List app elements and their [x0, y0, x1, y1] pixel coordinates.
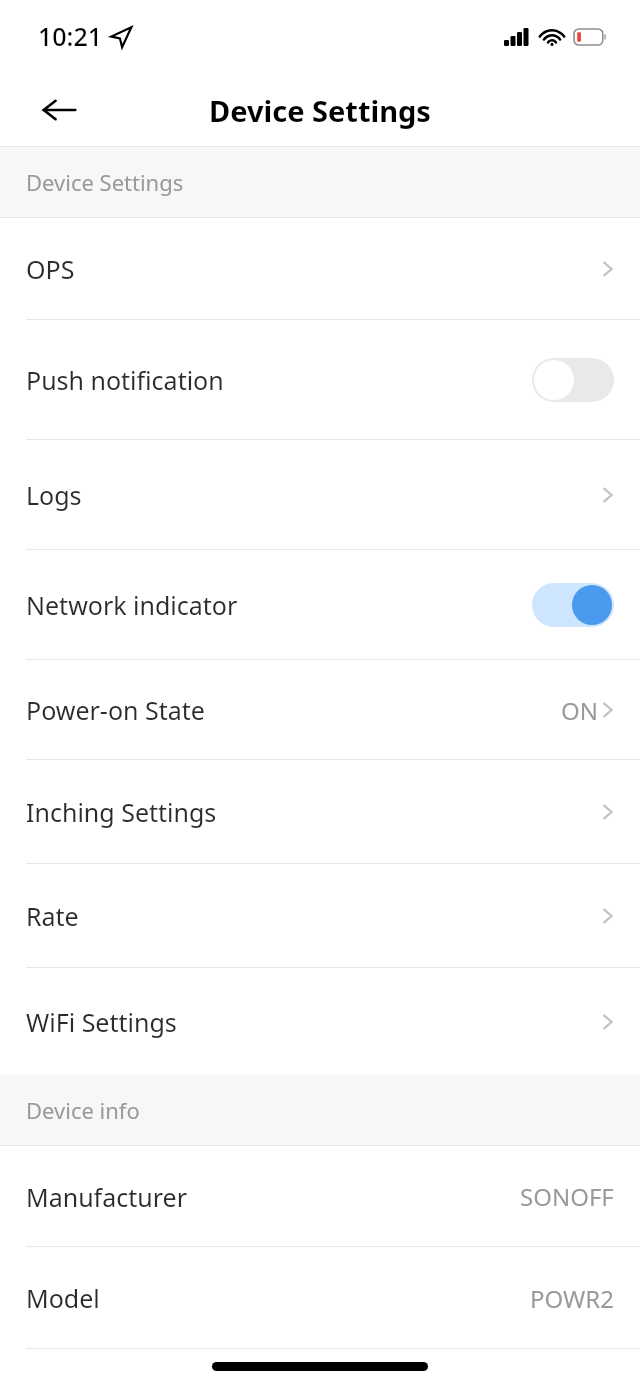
- staticText: Logs: [26, 478, 602, 512]
- button[interactable]: Push notification: [0, 320, 640, 440]
- staticText: Device Settings: [26, 167, 184, 197]
- staticText: 10:21: [38, 19, 103, 53]
- button[interactable]: WiFi Settings: [0, 968, 640, 1075]
- button[interactable]: Manufacturer: [0, 1146, 640, 1247]
- staticText: POWR2: [530, 1282, 614, 1315]
- staticText: SONOFF: [520, 1180, 614, 1213]
- staticText: Rate: [26, 899, 602, 933]
- button[interactable]: Rate: [0, 864, 640, 968]
- staticText: OPS: [26, 252, 602, 286]
- button[interactable]: Network indicator: [0, 550, 640, 660]
- staticText: ON: [561, 694, 598, 727]
- staticText: Model: [26, 1281, 530, 1315]
- staticText: Network indicator: [26, 588, 532, 622]
- staticText: WiFi Settings: [26, 1005, 602, 1039]
- button[interactable]: Model: [0, 1247, 640, 1349]
- staticText: Power-on State: [26, 693, 561, 727]
- button[interactable]: OPS: [0, 218, 640, 320]
- staticText: Push notification: [26, 363, 532, 397]
- button[interactable]: [532, 358, 614, 402]
- button[interactable]: [532, 583, 614, 627]
- staticText: Inching Settings: [26, 795, 602, 829]
- button[interactable]: Logs: [0, 440, 640, 550]
- button[interactable]: Power-on State: [0, 660, 640, 760]
- staticText: Manufacturer: [26, 1180, 520, 1214]
- staticText: Device Settings: [209, 91, 431, 130]
- staticText: Device info: [26, 1095, 140, 1125]
- button[interactable]: Inching Settings: [0, 760, 640, 864]
- button[interactable]: Back: [30, 81, 88, 139]
